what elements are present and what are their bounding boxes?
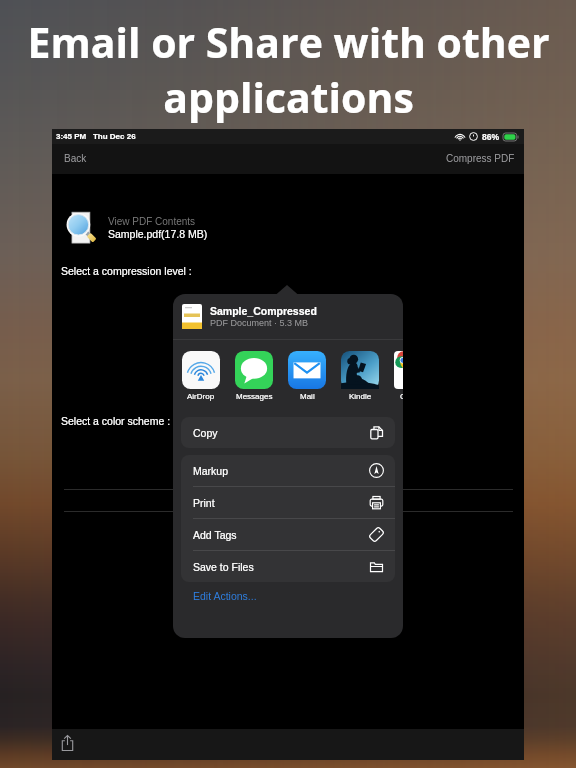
- staticText: Select a compression level :: [61, 265, 192, 277]
- staticText: Compress PDF: [446, 153, 515, 164]
- staticText: Edit Actions...: [193, 590, 257, 602]
- staticText: Back: [64, 153, 87, 164]
- button[interactable]: Print: [181, 487, 395, 518]
- button[interactable]: AirDrop: [182, 351, 220, 401]
- button[interactable]: Edit Actions...: [193, 590, 257, 602]
- staticText: Copy: [193, 427, 218, 439]
- staticText: Mail: [300, 392, 315, 401]
- staticText: Messages: [236, 392, 273, 401]
- button[interactable]: Mail: [288, 351, 326, 401]
- button[interactable]: Kindle: [341, 351, 379, 401]
- button[interactable]: Back: [52, 149, 95, 170]
- staticText: AirDrop: [187, 392, 215, 401]
- button[interactable]: Compress PDF: [438, 149, 524, 170]
- button[interactable]: Save to Files: [181, 551, 395, 582]
- staticText: 3:45 PM Thu Dec 26: [56, 132, 136, 141]
- staticText: C: [400, 392, 403, 401]
- button[interactable]: Messages: [235, 351, 273, 401]
- staticText: PDF Document · 5.3 MB: [210, 318, 309, 328]
- staticText: Print: [193, 497, 215, 509]
- staticText: Markup: [193, 465, 229, 477]
- button[interactable]: Share: [61, 735, 74, 751]
- staticText: 86%: [482, 132, 500, 141]
- staticText: Add Tags: [193, 529, 237, 541]
- button[interactable]: Sample_Compressed: [173, 294, 403, 338]
- staticText: Sample_Compressed: [210, 305, 317, 317]
- staticText: Save to Files: [193, 561, 254, 573]
- staticText: Sample.pdf(17.8 MB): [108, 228, 208, 240]
- staticText: Select a color scheme :: [61, 415, 171, 427]
- button[interactable]: Markup: [181, 455, 395, 486]
- button[interactable]: View PDF Contents: [64, 210, 208, 246]
- button[interactable]: Add Tags: [181, 519, 395, 550]
- staticText: View PDF Contents: [108, 216, 196, 227]
- button[interactable]: C: [394, 351, 403, 401]
- staticText: Email or Share with other applications: [27, 14, 550, 125]
- button[interactable]: Copy: [181, 417, 395, 448]
- staticText: Kindle: [349, 392, 372, 401]
